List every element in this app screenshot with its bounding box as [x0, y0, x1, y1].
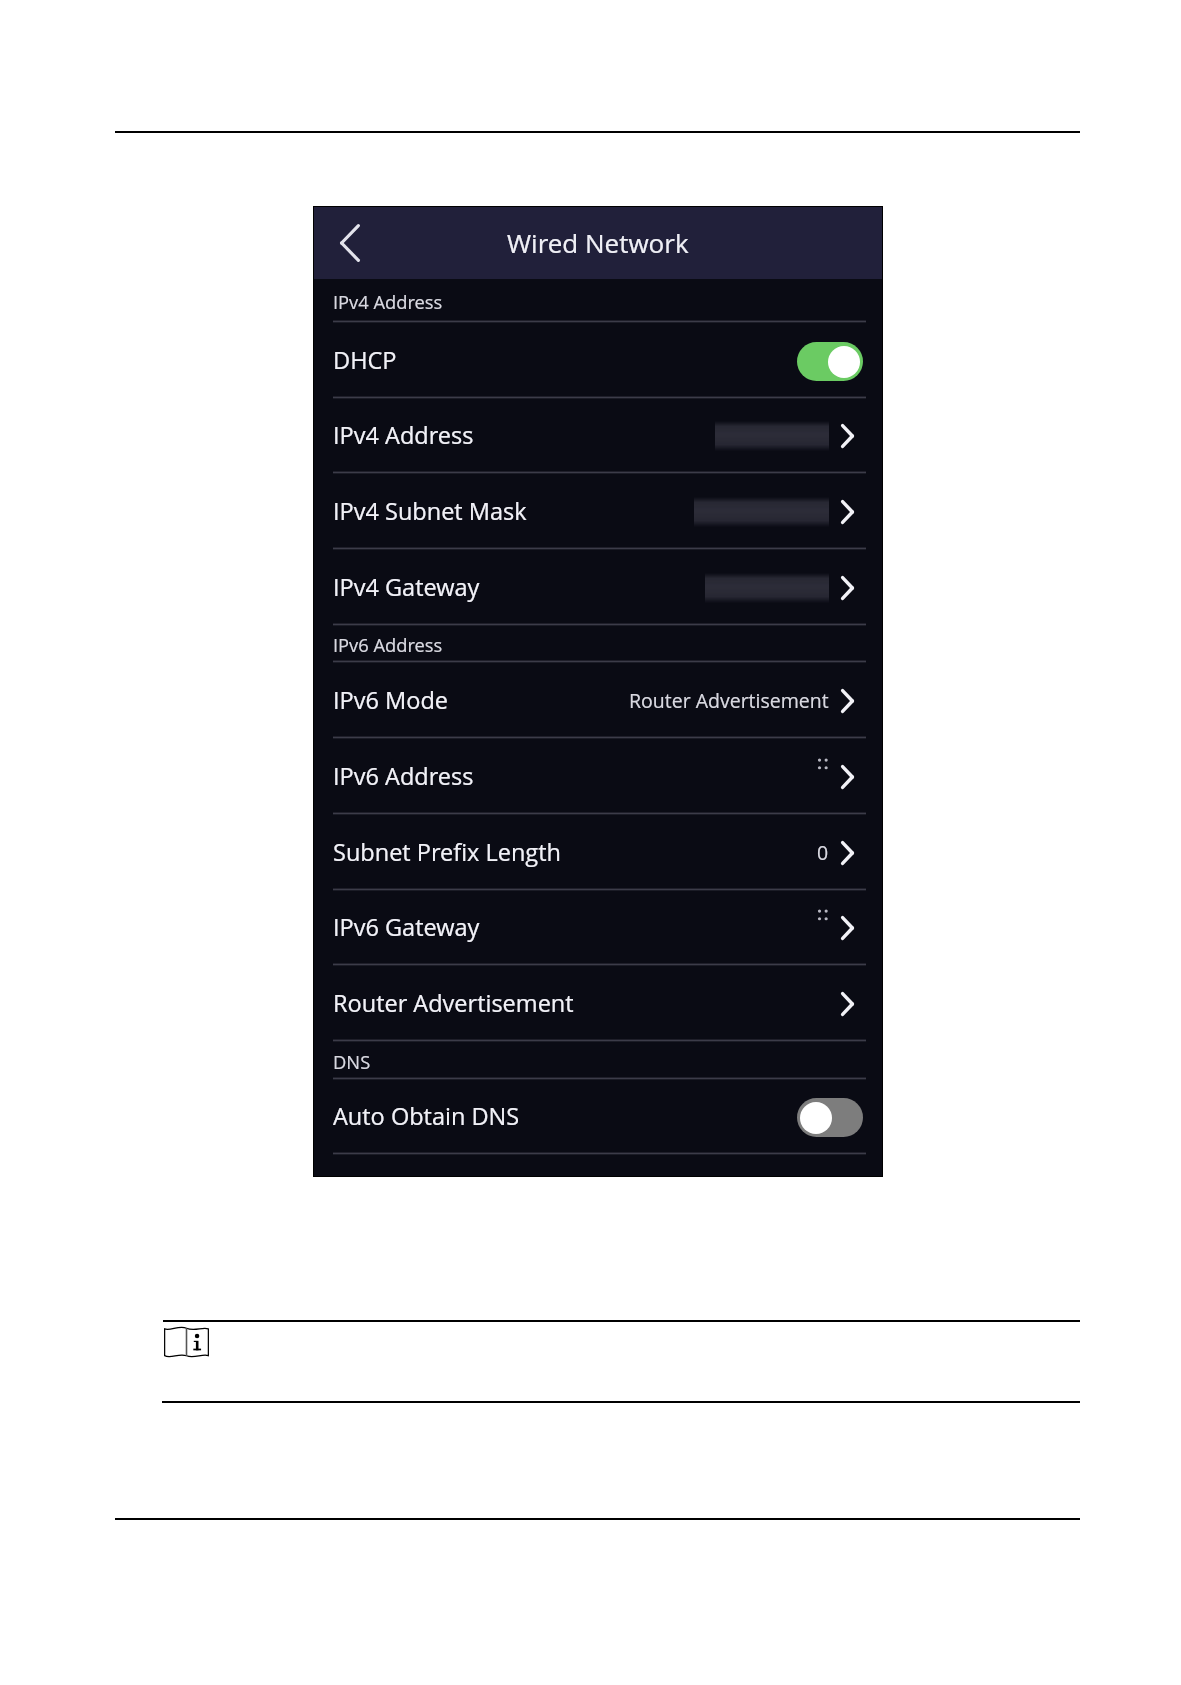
staticText: IPv4 Address	[333, 419, 474, 451]
staticText: IPv4 Address	[333, 289, 443, 314]
button[interactable]: Router Advertisement	[314, 966, 882, 1042]
staticText: IPv4 Gateway	[333, 571, 480, 603]
staticText: DHCP	[333, 344, 397, 376]
staticText: DNS	[333, 1049, 371, 1074]
staticText: Router Advertisement	[629, 687, 829, 714]
button[interactable]: Auto Obtain DNS	[314, 1079, 882, 1155]
staticText: Router Advertisement	[333, 987, 574, 1019]
staticText: IPv6 Mode	[333, 684, 449, 716]
staticText: 0	[817, 839, 829, 866]
button[interactable]: IPv4 Subnet Mask	[314, 474, 882, 550]
button[interactable]: IPv6 Address	[314, 739, 882, 815]
button[interactable]: Back	[325, 218, 375, 268]
button[interactable]: IPv6 Mode	[314, 663, 882, 739]
staticText: Wired Network	[507, 225, 689, 260]
staticText: IPv6 Address	[333, 632, 443, 657]
button[interactable]: Subnet Prefix Length	[314, 815, 882, 891]
button[interactable]: Switch on	[797, 342, 863, 381]
staticText: IPv4 Subnet Mask	[333, 495, 527, 527]
button[interactable]: Switch off	[797, 1098, 863, 1137]
staticText: Auto Obtain DNS	[333, 1100, 520, 1132]
staticText: Subnet Prefix Length	[333, 836, 561, 868]
button[interactable]: IPv4 Gateway	[314, 550, 882, 626]
button[interactable]: DHCP	[314, 323, 882, 399]
button[interactable]: IPv6 Gateway	[314, 890, 882, 966]
staticText: IPv6 Gateway	[333, 911, 480, 943]
button[interactable]: IPv4 Address	[314, 398, 882, 474]
staticText: IPv6 Address	[333, 760, 474, 792]
